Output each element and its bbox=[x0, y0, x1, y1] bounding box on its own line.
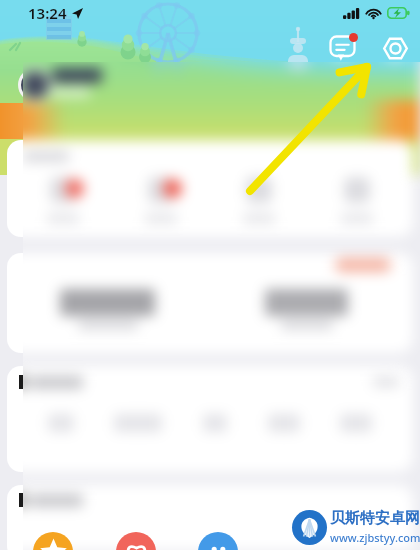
button[interactable] bbox=[7, 253, 413, 353]
button[interactable] bbox=[7, 485, 413, 550]
button[interactable]: Settings bbox=[376, 29, 414, 67]
button[interactable] bbox=[7, 366, 413, 472]
button[interactable] bbox=[119, 173, 203, 223]
button[interactable] bbox=[7, 366, 413, 472]
button[interactable] bbox=[217, 173, 301, 223]
button[interactable]: Messages bbox=[323, 29, 361, 67]
button[interactable] bbox=[315, 173, 399, 223]
button[interactable] bbox=[7, 253, 413, 353]
button[interactable]: App shortcut bbox=[33, 532, 73, 550]
staticText: www.zjbstyy.com bbox=[330, 530, 420, 545]
button[interactable] bbox=[7, 485, 413, 550]
button[interactable]: Settings bbox=[376, 29, 414, 67]
button[interactable] bbox=[21, 173, 105, 223]
button[interactable]: App shortcut bbox=[116, 532, 156, 550]
button[interactable]: Profile bbox=[18, 68, 52, 102]
button[interactable] bbox=[217, 173, 301, 223]
button[interactable] bbox=[21, 173, 105, 223]
staticText: 贝斯特安卓网 bbox=[330, 509, 420, 528]
button[interactable] bbox=[315, 173, 399, 223]
staticText: 13:24 bbox=[28, 3, 67, 23]
button[interactable]: Profile bbox=[18, 68, 52, 102]
button[interactable] bbox=[119, 173, 203, 223]
button[interactable] bbox=[7, 140, 413, 237]
button[interactable] bbox=[7, 140, 413, 237]
button[interactable]: Messages bbox=[323, 29, 361, 67]
staticText: 13:24 bbox=[28, 3, 67, 23]
button[interactable]: App shortcut bbox=[198, 532, 238, 550]
